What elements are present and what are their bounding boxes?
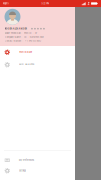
staticText: Tech ID : 47 <box>24 32 37 35</box>
staticText: My Preferences <box>19 159 34 161</box>
button[interactable]: My Preferences <box>0 155 75 165</box>
staticText: Settings <box>19 170 26 172</box>
staticText: ROGER ALEXANDER <box>4 27 26 30</box>
staticText: ID : Norvtech 3501 <box>24 36 44 38</box>
staticText: 3:22 PM <box>41 2 49 5</box>
staticText: TECH INSIGHT <box>19 51 32 53</box>
staticText: Make Technician : <box>4 32 22 35</box>
button[interactable]: Settings <box>0 165 75 176</box>
staticText: Contact Number : <box>4 39 23 42</box>
button[interactable]: TECH INSIGHT <box>0 46 75 58</box>
staticText: Rogers <box>2 2 8 5</box>
staticText: WIFI ANALYZER <box>19 63 34 66</box>
button[interactable]: WIFI ANALYZER <box>0 58 75 71</box>
staticText: +1 843 513 8012 <box>25 39 41 42</box>
staticText: Company Name : <box>4 36 22 38</box>
